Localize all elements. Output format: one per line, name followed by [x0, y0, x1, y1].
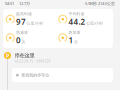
- staticText: 44.2: [69, 16, 86, 27]
- staticText: 次: [21, 40, 25, 44]
- staticText: 停在这里: [14, 52, 34, 59]
- staticText: 公里/小时: [86, 21, 103, 26]
- staticText: 查找我的停车位: [21, 73, 49, 78]
- staticText: 0: [16, 35, 21, 46]
- staticText: 04:51: [5, 1, 14, 6]
- staticText: 12.7万: [19, 1, 30, 6]
- staticText: 97: [16, 16, 26, 27]
- staticText: P: [6, 52, 9, 59]
- staticText: 公里/小时: [26, 21, 43, 26]
- staticText: 平均时速: [69, 11, 85, 16]
- staticText: 次: [74, 40, 78, 44]
- staticText: 18:22-20:15 · 4985529: [14, 60, 50, 63]
- staticText: 急减速: [16, 30, 28, 35]
- staticText: 5.9K/秒 214.5公里: [85, 1, 115, 6]
- staticText: 急加速: [69, 30, 81, 35]
- staticText: 最高时速: [16, 11, 32, 16]
- staticText: 1: [69, 35, 74, 46]
